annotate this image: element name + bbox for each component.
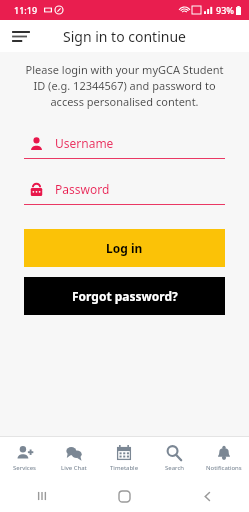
staticText: Password: [55, 181, 110, 197]
staticText: Notifications: [206, 464, 242, 472]
staticText: Username: [55, 135, 114, 151]
button[interactable]: Search: [149, 436, 199, 480]
button[interactable]: Recent apps: [0, 480, 83, 512]
staticText: 93%: [216, 4, 234, 16]
button[interactable]: Home: [83, 480, 166, 512]
staticText: Timetable: [110, 464, 139, 472]
button[interactable]: Forgot password?: [24, 277, 225, 315]
button[interactable]: Live Chat: [49, 436, 99, 480]
staticText: Forgot password?: [72, 288, 178, 304]
staticText: Search: [165, 464, 184, 472]
staticText: Live Chat: [61, 464, 87, 472]
staticText: Please login with your myGCA Student ID …: [16, 62, 233, 109]
staticText: 11:19: [14, 4, 38, 16]
staticText: Log in: [106, 240, 143, 256]
button[interactable]: Password: [24, 181, 225, 205]
button[interactable]: Username: [24, 135, 225, 159]
button[interactable]: Timetable: [99, 436, 149, 480]
button[interactable]: Services: [0, 436, 49, 480]
button[interactable]: Log in: [24, 229, 225, 267]
staticText: Sign in to continue: [63, 27, 186, 46]
button[interactable]: Open navigation menu: [6, 21, 36, 51]
button[interactable]: Notifications: [199, 436, 249, 480]
staticText: Services: [13, 464, 36, 472]
button[interactable]: Back: [166, 480, 249, 512]
